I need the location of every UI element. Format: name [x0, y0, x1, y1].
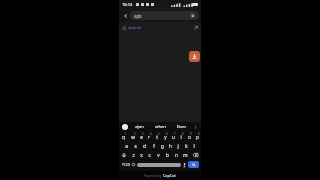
button[interactable]: when [150, 124, 171, 130]
button[interactable]: Itsm [171, 124, 192, 130]
button[interactable]: 3 [137, 132, 145, 141]
staticText: 5 [158, 132, 160, 136]
staticText: v [157, 152, 160, 158]
staticText: i [180, 134, 182, 140]
staticText: b [166, 152, 169, 158]
staticText: 9 [190, 132, 192, 136]
staticText: 3 [142, 132, 144, 136]
staticText: w [131, 134, 135, 140]
staticText: t [156, 134, 158, 140]
staticText: 1 [125, 132, 127, 136]
staticText: Powered by [144, 174, 163, 178]
button[interactable]: Shift [119, 150, 129, 159]
button[interactable]: Space [137, 163, 181, 167]
button[interactable]: v [154, 150, 163, 159]
staticText: m [183, 152, 188, 158]
button[interactable]: s [131, 141, 140, 150]
staticText: f [153, 143, 155, 149]
staticText: n [175, 152, 178, 158]
button[interactable]: 7 [169, 132, 177, 141]
button[interactable]: j [174, 141, 182, 150]
button[interactable]: 5 [153, 132, 161, 141]
button[interactable]: g [158, 141, 166, 150]
staticText: j [177, 143, 179, 149]
staticText: y [164, 134, 167, 140]
staticText: s [134, 143, 137, 149]
button[interactable]: Clear [190, 13, 195, 18]
button[interactable]: 0 [193, 132, 201, 141]
button[interactable]: Back [121, 11, 130, 20]
button[interactable]: 8 [177, 132, 185, 141]
button[interactable]: l [190, 141, 198, 150]
staticText: d [143, 143, 146, 149]
staticText: e [140, 134, 143, 140]
button[interactable]: f [149, 141, 158, 150]
button[interactable]: More suggestions [192, 126, 198, 129]
button[interactable]: 4 [145, 132, 153, 141]
button[interactable]: Downloads [189, 51, 200, 62]
staticText: 2 [134, 132, 136, 136]
button[interactable]: h [166, 141, 174, 150]
staticText: q [122, 134, 125, 140]
staticText: ?123 [122, 162, 130, 167]
button[interactable]: apkmb [119, 22, 201, 33]
staticText: h [169, 143, 172, 149]
staticText: apk [134, 13, 142, 19]
staticText: 4 [150, 132, 152, 136]
staticText: r [148, 134, 150, 140]
button[interactable]: Backspace [190, 150, 201, 159]
button[interactable]: Google [122, 124, 128, 130]
button[interactable]: n [172, 150, 181, 159]
staticText: when [155, 124, 166, 130]
staticText: a [125, 143, 128, 149]
staticText: c [148, 152, 151, 158]
button[interactable]: Voice input [181, 159, 188, 170]
staticText: 8 [182, 132, 184, 136]
button[interactable]: ajon [128, 124, 150, 130]
button[interactable]: 9 [185, 132, 193, 141]
staticText: ajon [135, 124, 144, 130]
staticText: k [185, 143, 188, 149]
staticText: o [188, 134, 191, 140]
button[interactable]: k [182, 141, 190, 150]
button[interactable]: m [181, 150, 190, 159]
staticText: Itsm [177, 124, 186, 130]
button[interactable]: a [122, 141, 131, 150]
staticText: g [161, 143, 164, 149]
staticText: 16:14 [122, 2, 133, 7]
staticText: z [132, 152, 135, 158]
staticText: 7 [174, 132, 176, 136]
button[interactable]: c [145, 150, 154, 159]
button[interactable]: x [137, 150, 145, 159]
staticText: u [172, 134, 175, 140]
button[interactable]: Emoji [130, 159, 137, 170]
staticText: apkmb [128, 25, 142, 31]
staticText: 0 [198, 132, 200, 136]
button[interactable]: 6 [161, 132, 169, 141]
staticText: l [193, 143, 195, 149]
button[interactable]: z [129, 150, 137, 159]
staticText: 6 [166, 132, 168, 136]
staticText: p [196, 134, 199, 140]
button[interactable]: b [163, 150, 172, 159]
button[interactable]: apk [130, 11, 199, 20]
button[interactable]: ?123 [121, 159, 130, 170]
button[interactable]: d [140, 141, 149, 150]
button[interactable]: Search [188, 161, 199, 168]
staticText: x [140, 152, 143, 158]
button[interactable]: 1 [119, 132, 128, 141]
staticText: CapCut [163, 173, 176, 178]
button[interactable]: 2 [128, 132, 137, 141]
